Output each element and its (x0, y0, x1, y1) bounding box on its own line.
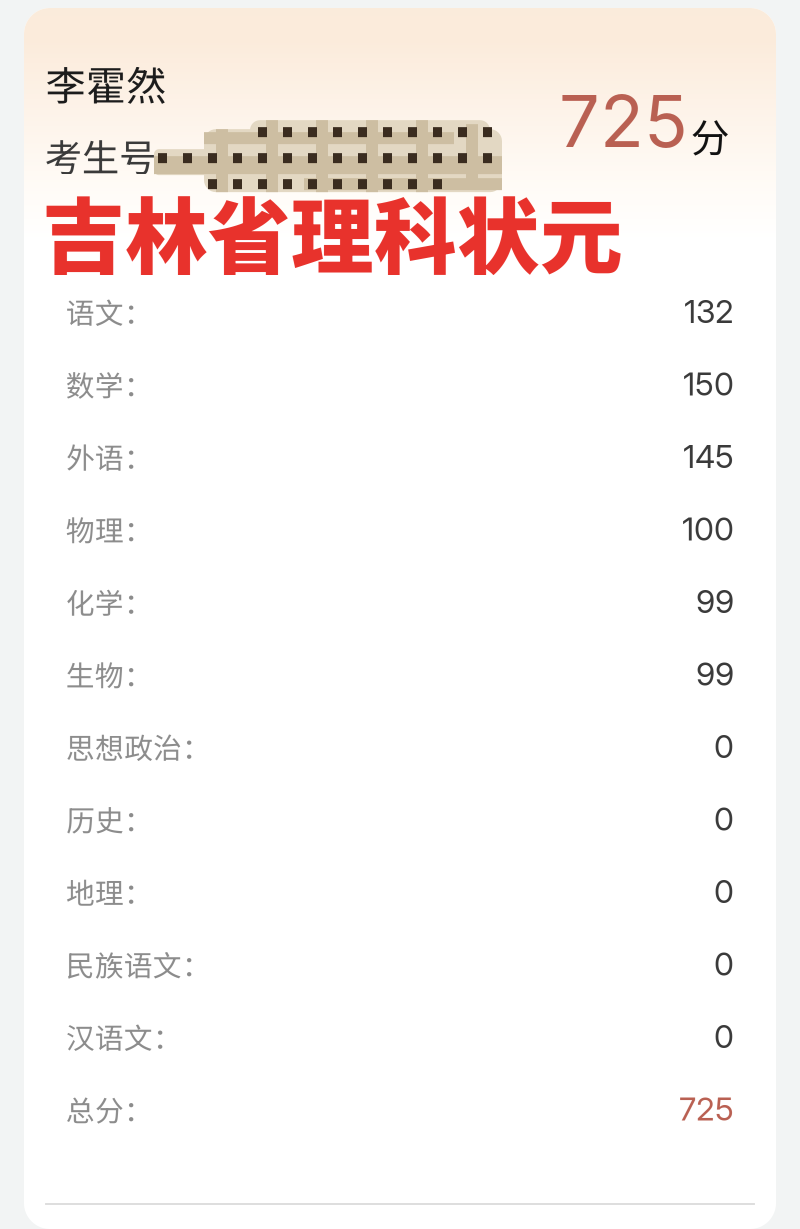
staticText: 数学： (66, 363, 153, 404)
staticText: 历史： (66, 798, 153, 839)
button[interactable]: 思想政治： (24, 710, 776, 782)
staticText: 民族语文： (66, 943, 211, 984)
button[interactable]: 地理： (24, 855, 776, 927)
button[interactable]: 化学： (24, 565, 776, 637)
button[interactable]: 民族语文： (24, 927, 776, 1000)
staticText: 0 (714, 1017, 734, 1056)
staticText: 725 (559, 77, 688, 164)
staticText: 0 (714, 799, 734, 838)
staticText: 0 (714, 944, 734, 983)
button[interactable]: 外语： (24, 420, 776, 492)
button[interactable]: 生物： (24, 637, 776, 710)
staticText: 化学： (66, 580, 153, 622)
staticText: 外语： (66, 435, 153, 477)
staticText: 分 (691, 107, 730, 163)
staticText: 生物： (66, 653, 153, 694)
staticText: 100 (682, 509, 734, 548)
button[interactable]: 数学： (24, 347, 776, 420)
button[interactable]: 语文： (24, 275, 776, 347)
staticText: 0 (714, 727, 734, 766)
staticText: 总分： (66, 1088, 153, 1129)
staticText: 132 (684, 292, 734, 331)
staticText: 150 (683, 364, 734, 403)
staticText: 语文： (66, 290, 153, 332)
staticText: 汉语文： (66, 1015, 182, 1057)
staticText: 吉林省理科状元 (42, 171, 623, 291)
staticText: 725 (679, 1089, 734, 1128)
staticText: 地理： (66, 870, 153, 912)
button[interactable]: 物理： (24, 492, 776, 565)
staticText: 思想政治： (66, 725, 211, 767)
button[interactable]: 汉语文： (24, 1000, 776, 1072)
staticText: 考生号 (45, 128, 156, 182)
button[interactable]: 历史： (24, 782, 776, 855)
staticText: 145 (683, 437, 734, 476)
staticText: 物理： (66, 508, 153, 549)
button[interactable]: 总分： (24, 1072, 776, 1145)
staticText: 0 (714, 872, 734, 911)
staticText: 李霍然 (46, 54, 166, 112)
staticText: 99 (696, 654, 734, 693)
staticText: 99 (696, 582, 734, 621)
